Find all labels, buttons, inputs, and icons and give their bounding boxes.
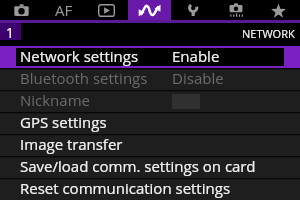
button[interactable]: Playback menu [85,0,128,20]
staticText: NETWORK [242,26,295,41]
staticText: 1 [6,23,15,40]
staticText: Disable [172,68,224,88]
button[interactable]: Reset communication settings [0,178,300,200]
staticText: Network settings [20,46,139,66]
button[interactable]: Autofocus menu [42,0,85,20]
staticText: Image transfer [20,134,123,154]
button[interactable]: GPS settings [0,112,300,134]
button[interactable]: Nickname [0,90,300,112]
button[interactable]: Shooting menu [0,0,42,20]
button[interactable]: Image transfer [0,134,300,156]
button[interactable]: Setup menu [171,0,214,20]
button[interactable]: My menu [257,0,300,20]
button[interactable]: Custom functions menu [214,0,257,20]
button[interactable]: Page 1 [0,23,21,40]
staticText: Save/load comm. settings on card [20,156,256,176]
button[interactable]: Save/load comm. settings on card [0,156,300,178]
staticText: Bluetooth settings [20,68,148,88]
staticText: Nickname [20,90,91,110]
staticText: Reset communication settings [20,178,231,198]
staticText: Enable [172,46,220,66]
staticText: GPS settings [20,112,107,132]
button[interactable]: Network menu [128,0,171,20]
staticText: AF [55,0,73,20]
button[interactable]: Bluetooth settings [0,68,300,90]
button[interactable]: Network settings [0,46,300,68]
